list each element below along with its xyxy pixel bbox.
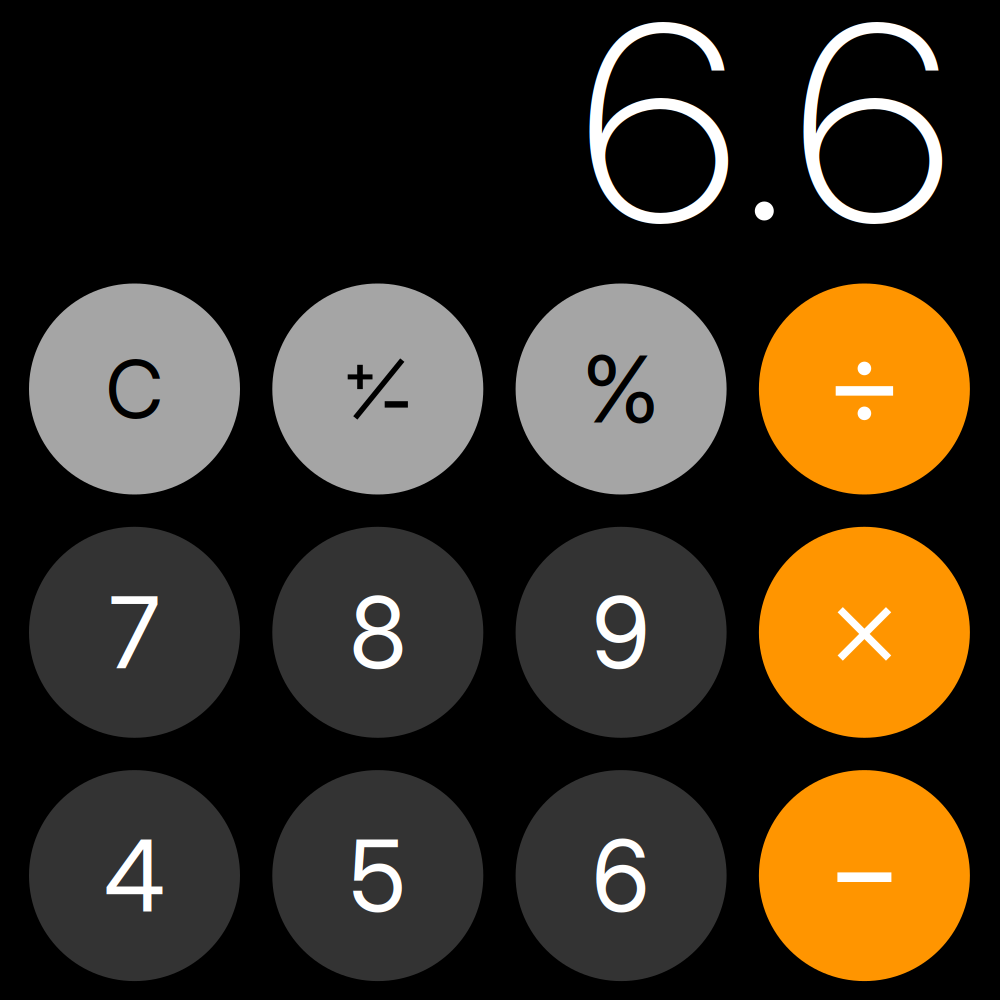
button[interactable]: Divide <box>759 283 970 494</box>
button[interactable]: Minus <box>759 770 970 981</box>
button[interactable]: Plus minus <box>272 283 483 494</box>
staticText: 6 <box>799 0 946 286</box>
group: 6.6 <box>589 21 942 224</box>
staticText: 4 <box>104 816 165 935</box>
staticText: % <box>582 333 660 445</box>
staticText: C <box>105 341 163 437</box>
button[interactable]: Percent <box>516 283 727 494</box>
staticText: 9 <box>592 573 650 692</box>
staticText: 6 <box>585 0 732 286</box>
staticText: 8 <box>349 573 406 692</box>
button[interactable]: 6 <box>516 770 727 981</box>
button[interactable]: 5 <box>272 770 483 981</box>
button[interactable]: 4 <box>29 770 240 981</box>
button[interactable]: 8 <box>272 527 483 738</box>
button[interactable]: 7 <box>29 527 240 738</box>
button[interactable]: Clear <box>29 283 240 494</box>
staticText: 6 <box>592 816 650 935</box>
button[interactable]: 9 <box>516 527 727 738</box>
button[interactable]: Multiply <box>759 527 970 738</box>
staticText: 7 <box>109 573 160 692</box>
staticText: 5 <box>349 816 406 935</box>
